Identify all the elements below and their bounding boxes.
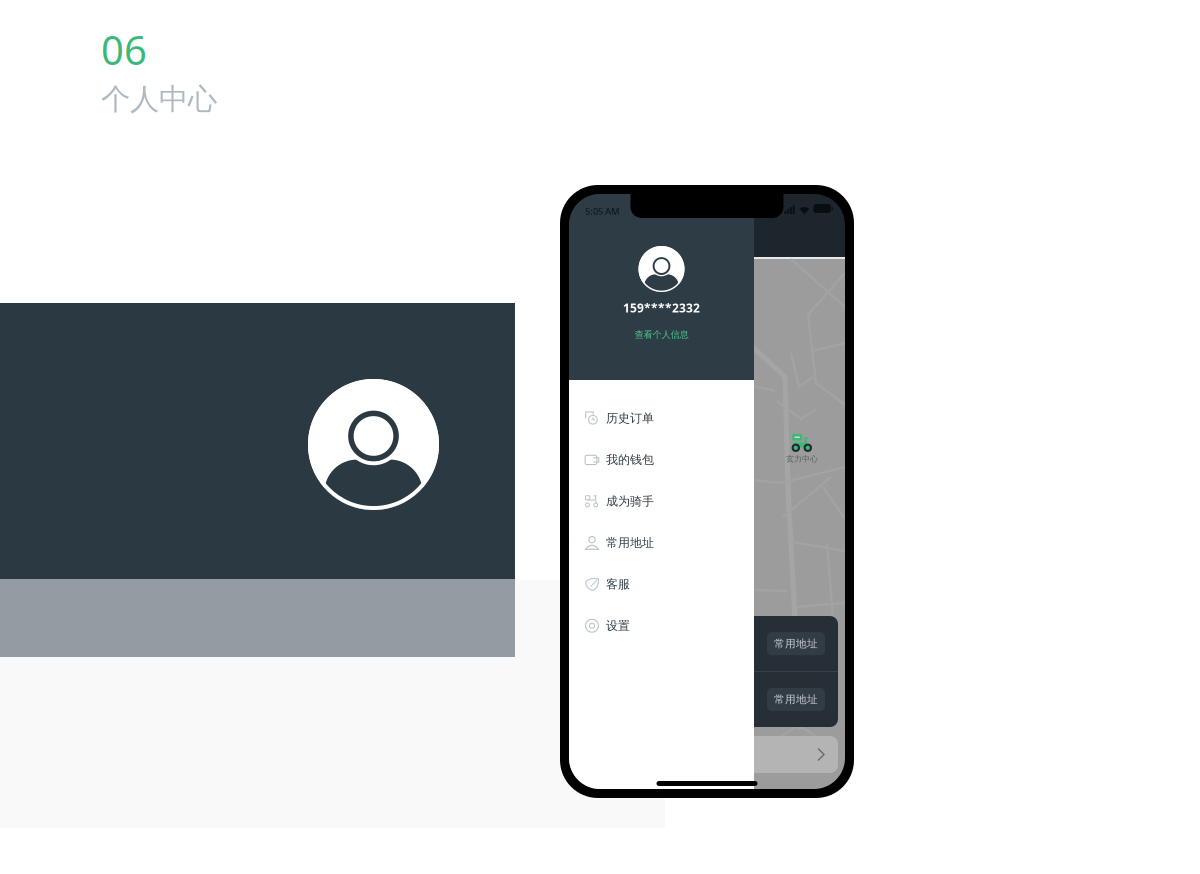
staticText: 我的钱包 bbox=[606, 452, 654, 467]
staticText: 159****2332 bbox=[623, 300, 700, 316]
button[interactable]: 历史订单 bbox=[569, 397, 754, 439]
staticText: 玄力中心 bbox=[786, 454, 818, 464]
staticText: 个人中心 bbox=[101, 81, 217, 117]
button[interactable]: 设置 bbox=[569, 605, 754, 646]
staticText: 客服 bbox=[606, 577, 630, 592]
button[interactable]: 常用地址 bbox=[569, 522, 754, 563]
staticText: 常用地址 bbox=[606, 535, 654, 550]
staticText: 设置 bbox=[606, 618, 630, 633]
button[interactable]: 成为骑手 bbox=[569, 480, 754, 522]
staticText: 06 bbox=[101, 23, 147, 76]
button[interactable]: 客服 bbox=[569, 563, 754, 605]
staticText: 成为骑手 bbox=[606, 494, 654, 509]
button[interactable]: 常用地址 bbox=[696, 616, 838, 671]
button[interactable]: 查看个人信息 bbox=[626, 327, 696, 342]
staticText: 常用地址 bbox=[774, 637, 818, 650]
button[interactable]: 常用地址 bbox=[696, 672, 838, 727]
button[interactable]: 我的钱包 bbox=[569, 439, 754, 480]
staticText: 查看个人信息 bbox=[634, 329, 688, 340]
staticText: 历史订单 bbox=[606, 411, 654, 426]
staticText: 5:05 AM bbox=[585, 205, 620, 217]
staticText: 常用地址 bbox=[774, 693, 818, 706]
